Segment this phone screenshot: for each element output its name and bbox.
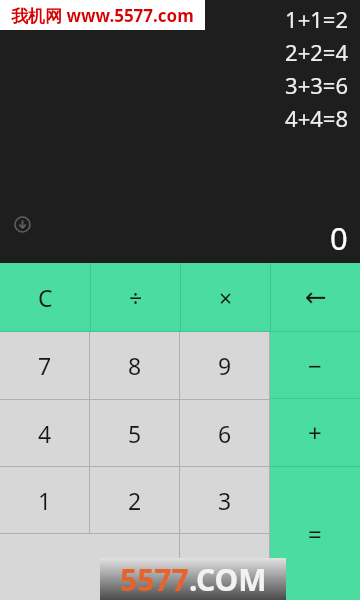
button[interactable]: 5 (90, 400, 179, 466)
button[interactable]: + (270, 399, 360, 466)
staticText: 9 (218, 350, 232, 381)
staticText: 5577 (120, 559, 189, 600)
staticText: 0 (330, 217, 348, 259)
button[interactable]: C (0, 263, 90, 331)
staticText: 4+4=8 (285, 103, 348, 133)
button[interactable]: ← (271, 263, 360, 331)
staticText: 我机网 www.5577.com (11, 4, 194, 27)
staticText: ÷ (129, 282, 143, 313)
button[interactable]: Expand history (14, 216, 31, 233)
staticText: 6 (218, 418, 232, 449)
staticText: 8 (128, 350, 142, 381)
staticText: 2 (128, 485, 142, 516)
button[interactable]: 9 (180, 332, 269, 399)
button[interactable]: 1 (0, 467, 89, 533)
button[interactable]: 4 (0, 400, 89, 466)
button[interactable]: 7 (0, 332, 89, 399)
staticText: 0 (139, 552, 153, 583)
button[interactable] (180, 534, 269, 600)
staticText: C (38, 282, 53, 313)
button[interactable]: × (181, 263, 270, 331)
button[interactable]: 6 (180, 400, 269, 466)
button[interactable]: 3 (180, 467, 269, 533)
button[interactable]: 2 (90, 467, 179, 533)
staticText: 5 (128, 418, 142, 449)
staticText: 4 (38, 418, 52, 449)
button[interactable]: = (270, 467, 360, 600)
button[interactable]: ÷ (91, 263, 180, 331)
staticText: 1+1=2 (285, 4, 348, 34)
staticText: 2+2=4 (285, 37, 348, 67)
staticText: × (219, 282, 233, 313)
button[interactable]: 8 (90, 332, 179, 399)
staticText: 1 (38, 485, 52, 516)
staticText: 3+3=6 (285, 70, 348, 100)
button[interactable]: 0 (0, 534, 179, 600)
staticText: − (308, 349, 322, 382)
button[interactable]: − (270, 332, 360, 398)
staticText: .COM (189, 559, 267, 600)
staticText: ← (305, 282, 327, 312)
staticText: + (308, 416, 322, 449)
staticText: 7 (38, 350, 52, 381)
staticText: 3 (218, 485, 232, 516)
staticText: = (308, 517, 322, 550)
